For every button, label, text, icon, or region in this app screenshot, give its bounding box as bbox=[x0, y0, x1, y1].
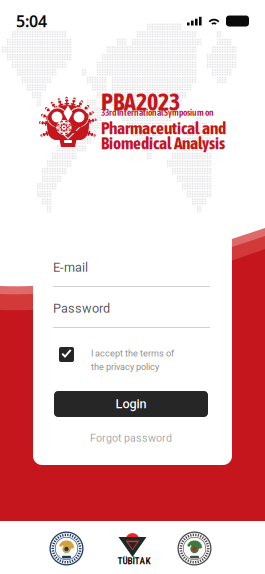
staticText: E-mail bbox=[53, 260, 88, 275]
button[interactable]: I accept the terms of bbox=[59, 347, 174, 372]
staticText: Forgot password bbox=[90, 432, 172, 444]
staticText: TÜBİTAK bbox=[117, 555, 150, 566]
staticText: Pharmaceutical and bbox=[101, 118, 226, 138]
staticText: the privacy policy bbox=[91, 362, 159, 372]
staticText: Login bbox=[115, 397, 146, 411]
staticText: I accept the terms of bbox=[91, 348, 174, 359]
staticText: Password bbox=[53, 301, 110, 316]
staticText: 33rd International Symposium on bbox=[101, 107, 214, 118]
button[interactable]: Forgot password bbox=[54, 431, 208, 445]
staticText: 5:04 bbox=[16, 10, 47, 32]
staticText: Biomedical Analysis bbox=[101, 133, 225, 153]
button[interactable]: Login bbox=[54, 391, 208, 417]
staticText: PBA2023 bbox=[101, 88, 180, 115]
